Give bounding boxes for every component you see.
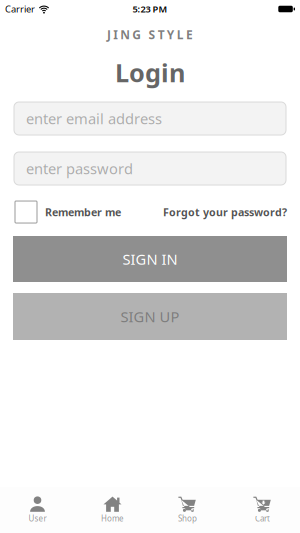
button[interactable]: enter password [14,152,286,185]
button[interactable]: enter email address [14,102,286,135]
staticText: Cart [255,513,270,524]
staticText: enter email address [26,109,162,128]
button[interactable]: Home [75,487,150,533]
button[interactable]: SIGN IN [13,236,287,282]
staticText: JING STYLE [107,26,193,42]
staticText: 5:23 PM [132,3,167,15]
button[interactable]: User [0,487,75,533]
button[interactable]: Cart [225,487,300,533]
staticText: SIGN IN [122,249,177,269]
staticText: Remember me [45,205,121,219]
staticText: enter password [26,159,133,178]
staticText: Home [101,513,124,524]
staticText: Carrier [5,3,35,15]
staticText: Login [115,56,185,89]
staticText: User [28,513,46,524]
button[interactable] [15,201,37,223]
button[interactable]: Shop [150,487,225,533]
staticText: Forgot your password? [163,205,287,219]
staticText: Shop [178,513,197,524]
button[interactable]: SIGN UP [13,293,287,340]
button[interactable]: Forgot your password? [163,205,287,219]
staticText: SIGN UP [120,307,179,326]
